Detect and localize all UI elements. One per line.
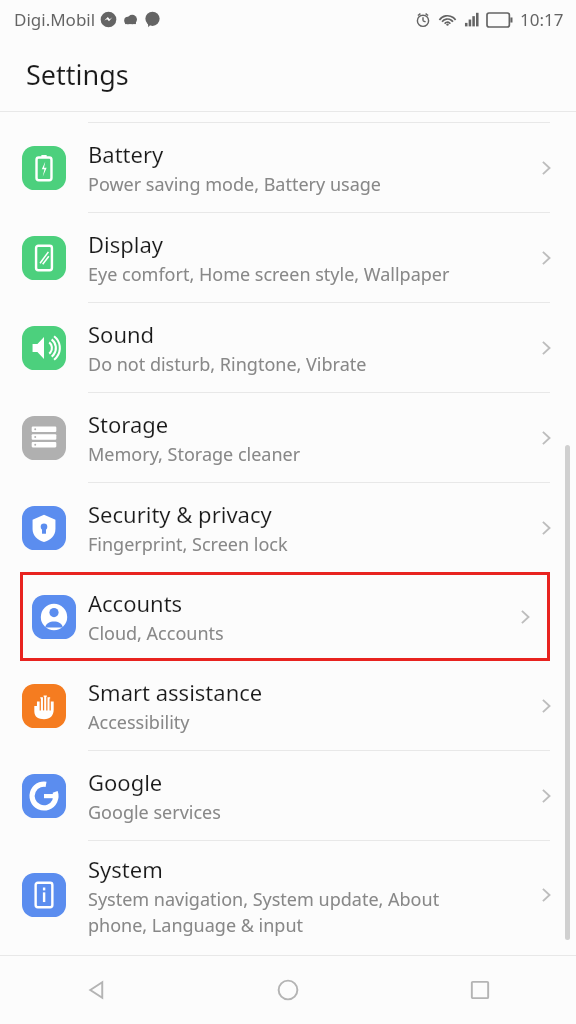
button[interactable]: Back <box>0 956 192 1024</box>
staticText: Do not disturb, Ringtone, Vibrate <box>88 352 367 377</box>
staticText: Accessibility <box>88 710 190 735</box>
staticText: System navigation, System update, About … <box>88 887 440 937</box>
staticText: 10:17 <box>520 8 564 31</box>
button[interactable]: Security & privacy <box>0 483 576 572</box>
staticText: Memory, Storage cleaner <box>88 442 301 467</box>
staticText: Fingerprint, Screen lock <box>88 532 288 557</box>
staticText: Google <box>88 767 163 797</box>
staticText: Storage <box>88 409 169 439</box>
staticText: System <box>88 854 163 884</box>
staticText: Battery <box>88 139 164 169</box>
button[interactable]: Smart assistance <box>0 661 576 750</box>
button[interactable]: Display <box>0 213 576 302</box>
button[interactable]: Home <box>192 956 384 1024</box>
staticText: Sound <box>88 319 155 349</box>
button[interactable]: Accounts <box>20 572 550 661</box>
button[interactable]: Sound <box>0 303 576 392</box>
staticText: Digi.Mobil <box>14 8 96 31</box>
staticText: Cloud, Accounts <box>88 621 224 646</box>
staticText: Eye comfort, Home screen style, Wallpape… <box>88 262 450 287</box>
staticText: Display <box>88 229 164 259</box>
staticText: Accounts <box>88 588 183 618</box>
button[interactable]: Google <box>0 751 576 840</box>
button[interactable]: Storage <box>0 393 576 482</box>
button[interactable]: System <box>0 841 576 949</box>
staticText: Smart assistance <box>88 677 263 707</box>
button[interactable]: Battery <box>0 123 576 212</box>
staticText: Settings <box>26 56 129 93</box>
button[interactable]: Recent apps <box>384 956 576 1024</box>
staticText: Power saving mode, Battery usage <box>88 172 381 197</box>
staticText: Security & privacy <box>88 499 272 529</box>
staticText: Google services <box>88 800 221 825</box>
